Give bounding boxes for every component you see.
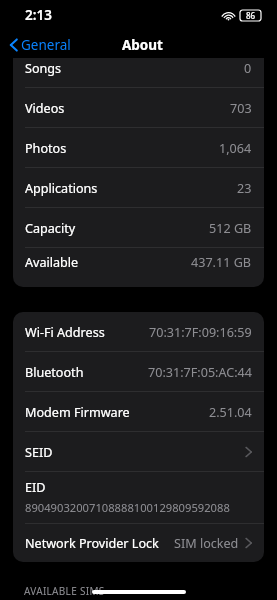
staticText: Bluetooth <box>25 364 84 381</box>
button[interactable]: Videos <box>13 88 264 128</box>
button[interactable]: General <box>7 34 74 56</box>
staticText: Network Provider Lock <box>25 535 159 552</box>
staticText: About <box>122 36 163 54</box>
staticText: 86 <box>246 10 256 21</box>
staticText: Available <box>25 254 79 271</box>
staticText: 2:13 <box>25 6 52 24</box>
button[interactable]: Available <box>13 248 264 277</box>
staticText: Wi-Fi Address <box>25 324 105 341</box>
staticText: Songs <box>25 60 62 77</box>
button[interactable]: Applications <box>13 168 264 208</box>
staticText: 2.51.04 <box>209 404 252 421</box>
staticText: General <box>21 36 71 54</box>
staticText: 89049032007108888100129809592088 <box>25 500 230 515</box>
staticText: EID <box>25 479 46 496</box>
button[interactable]: Modem Firmware <box>13 392 264 432</box>
staticText: Modem Firmware <box>25 404 130 421</box>
staticText: 1,064 <box>219 140 252 157</box>
button[interactable]: Capacity <box>13 208 264 248</box>
staticText: 23 <box>237 180 252 197</box>
button[interactable]: Photos <box>13 128 264 168</box>
staticText: AVAILABLE SIMS <box>24 584 105 598</box>
staticText: 70:31:7F:09:16:59 <box>149 324 252 341</box>
button[interactable]: SEID <box>13 432 264 472</box>
button[interactable]: Wi-Fi Address <box>13 312 264 352</box>
staticText: Applications <box>25 180 98 197</box>
button[interactable]: Network Provider Lock <box>13 524 264 562</box>
staticText: 0 <box>244 60 252 77</box>
staticText: 512 GB <box>209 220 252 237</box>
button[interactable]: Songs <box>13 58 264 88</box>
staticText: SIM locked <box>174 535 239 552</box>
staticText: 70:31:7F:05:AC:44 <box>148 364 252 381</box>
staticText: 437.11 GB <box>191 254 252 271</box>
staticText: Photos <box>25 140 67 157</box>
staticText: Videos <box>25 100 65 117</box>
staticText: Capacity <box>25 220 76 237</box>
staticText: 703 <box>230 100 252 117</box>
staticText: SEID <box>25 444 53 461</box>
button[interactable]: EID <box>13 472 264 524</box>
button[interactable]: Bluetooth <box>13 352 264 392</box>
